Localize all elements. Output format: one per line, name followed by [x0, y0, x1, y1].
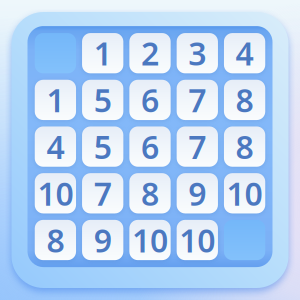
- staticText: 6: [141, 79, 159, 121]
- staticText: 2: [141, 32, 159, 74]
- staticText: 8: [141, 172, 159, 215]
- staticText: 5: [94, 79, 112, 121]
- staticText: 6: [141, 125, 159, 168]
- staticText: 9: [188, 172, 206, 215]
- staticText: 4: [46, 125, 64, 168]
- staticText: 10: [37, 172, 73, 215]
- staticText: 5: [94, 125, 112, 168]
- staticText: 3: [188, 32, 206, 74]
- staticText: 1: [46, 79, 64, 121]
- staticText: 7: [188, 79, 206, 121]
- staticText: 7: [188, 125, 206, 168]
- staticText: 8: [46, 219, 64, 261]
- staticText: 4: [236, 32, 254, 74]
- staticText: 8: [236, 125, 254, 168]
- staticText: 9: [94, 219, 112, 261]
- staticText: 10: [179, 219, 215, 261]
- staticText: 10: [132, 219, 168, 261]
- staticText: 8: [236, 79, 254, 121]
- staticText: 7: [94, 172, 112, 215]
- staticText: 10: [227, 172, 263, 215]
- staticText: 1: [94, 32, 112, 74]
